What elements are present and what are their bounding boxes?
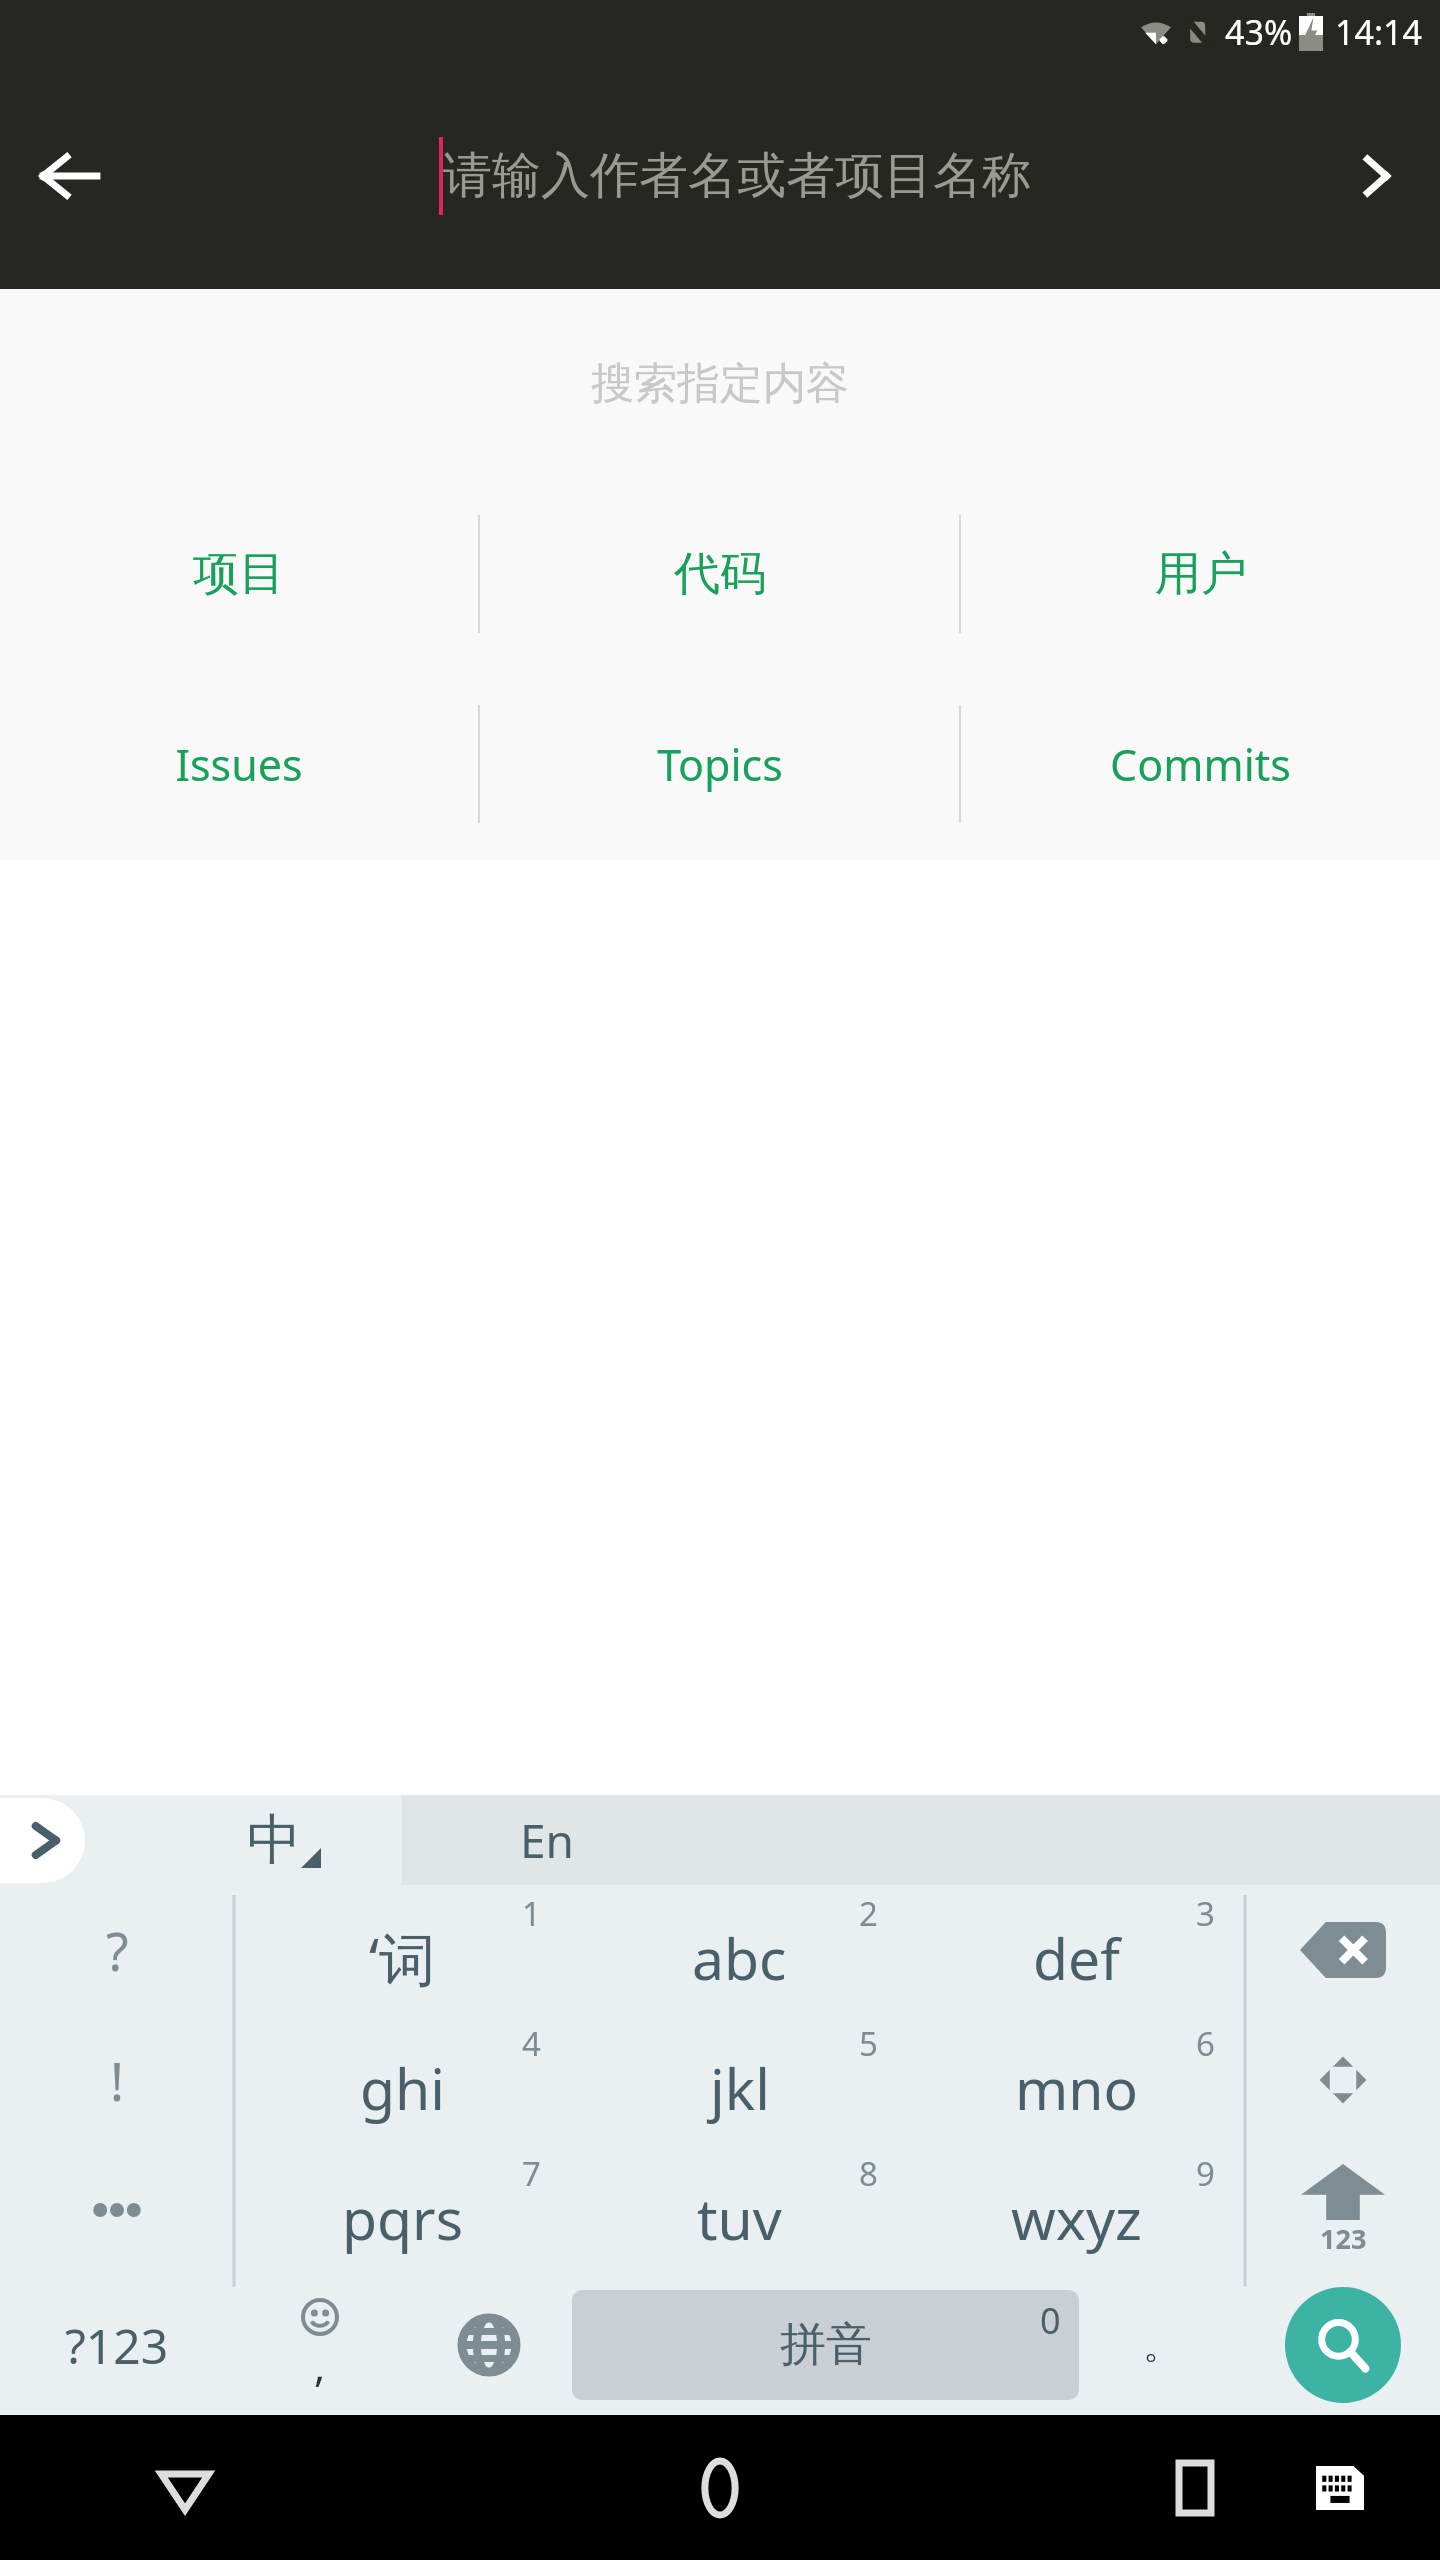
button[interactable]: 1 [234,1885,571,2015]
button[interactable]: En [402,1795,1440,1885]
button[interactable]: Commits [961,669,1440,859]
staticText: ghi [360,2049,445,2127]
staticText: jkl [710,2049,770,2127]
button[interactable]: Recent apps [1150,2443,1240,2533]
button[interactable]: 拼音 [572,2290,1079,2400]
staticText: 用户 [1155,545,1247,603]
staticText: mno [1015,2049,1139,2127]
staticText: wxyz [1011,2179,1142,2257]
staticText: 请输入作者名或者项目名称 [443,145,1031,207]
button[interactable]: Emoji [233,2275,406,2415]
button[interactable]: Change language [406,2275,572,2415]
button[interactable]: 3 [908,1885,1245,2015]
staticText: 中 [247,1806,301,1874]
button[interactable]: ? [0,1885,234,2015]
button[interactable]: 8 [571,2145,908,2275]
staticText: ?123 [65,2313,169,2378]
staticText: 代码 [674,545,766,603]
staticText: 9 [1196,2151,1215,2196]
button[interactable]: 中 [166,1795,402,1885]
staticText: 1 [522,1891,541,1936]
button[interactable]: 代码 [480,479,959,669]
staticText: 6 [1196,2021,1215,2066]
staticText: 搜索指定内容 [591,357,849,411]
staticText: 8 [859,2151,878,2196]
staticText: 项目 [193,545,285,603]
staticText: def [1033,1919,1120,1997]
button[interactable]: Topics [480,669,959,859]
staticText: 0 [1040,2296,1061,2345]
button[interactable]: 用户 [961,479,1440,669]
button[interactable]: 9 [908,2145,1245,2275]
staticText: 3 [1196,1891,1215,1936]
staticText: Issues [175,735,303,794]
button[interactable]: Home [675,2443,765,2533]
button[interactable]: Search [1245,2275,1440,2415]
staticText: En [520,1809,575,1872]
button[interactable]: ?123 [0,2275,233,2415]
staticText: 14:14 [1335,9,1422,55]
button[interactable]: Search [1344,148,1400,204]
staticText: Commits [1110,735,1291,794]
button[interactable]: Backspace [1245,1885,1440,2015]
button[interactable]: 2 [571,1885,908,2015]
staticText: Topics [657,735,783,794]
button[interactable]: Back [38,144,102,208]
staticText: ! [110,2045,124,2116]
staticText: abc [692,1919,787,1997]
button[interactable]: 。 [1079,2275,1245,2415]
staticText: 123 [1320,2220,1367,2257]
button[interactable]: Back [140,2443,230,2533]
button[interactable]: 6 [908,2015,1245,2145]
button[interactable]: 项目 [0,479,478,669]
button[interactable]: 4 [234,2015,571,2145]
staticText: 4 [522,2021,541,2066]
staticText: 5 [859,2021,878,2066]
button[interactable]: 7 [234,2145,571,2275]
staticText: ? [106,1915,129,1986]
staticText: 2 [859,1891,878,1936]
button[interactable]: Issues [0,669,478,859]
button[interactable]: Move cursor [1245,2015,1440,2145]
staticText: pqrs [342,2179,463,2257]
button[interactable]: Expand [0,1798,85,1883]
staticText: ‘词 [369,1919,436,1997]
staticText: 拼音 [780,2316,872,2374]
staticText: , [314,2337,326,2394]
button[interactable]: ! [0,2015,234,2145]
button[interactable] [0,2145,234,2275]
staticText: tuv [697,2179,782,2257]
button[interactable]: Shift [1245,2145,1440,2275]
staticText: 43% [1225,9,1293,55]
button[interactable]: Switch keyboard [1300,2448,1380,2528]
button[interactable]: 5 [571,2015,908,2145]
staticText: 。 [1143,2321,1181,2369]
staticText: 7 [522,2151,541,2196]
